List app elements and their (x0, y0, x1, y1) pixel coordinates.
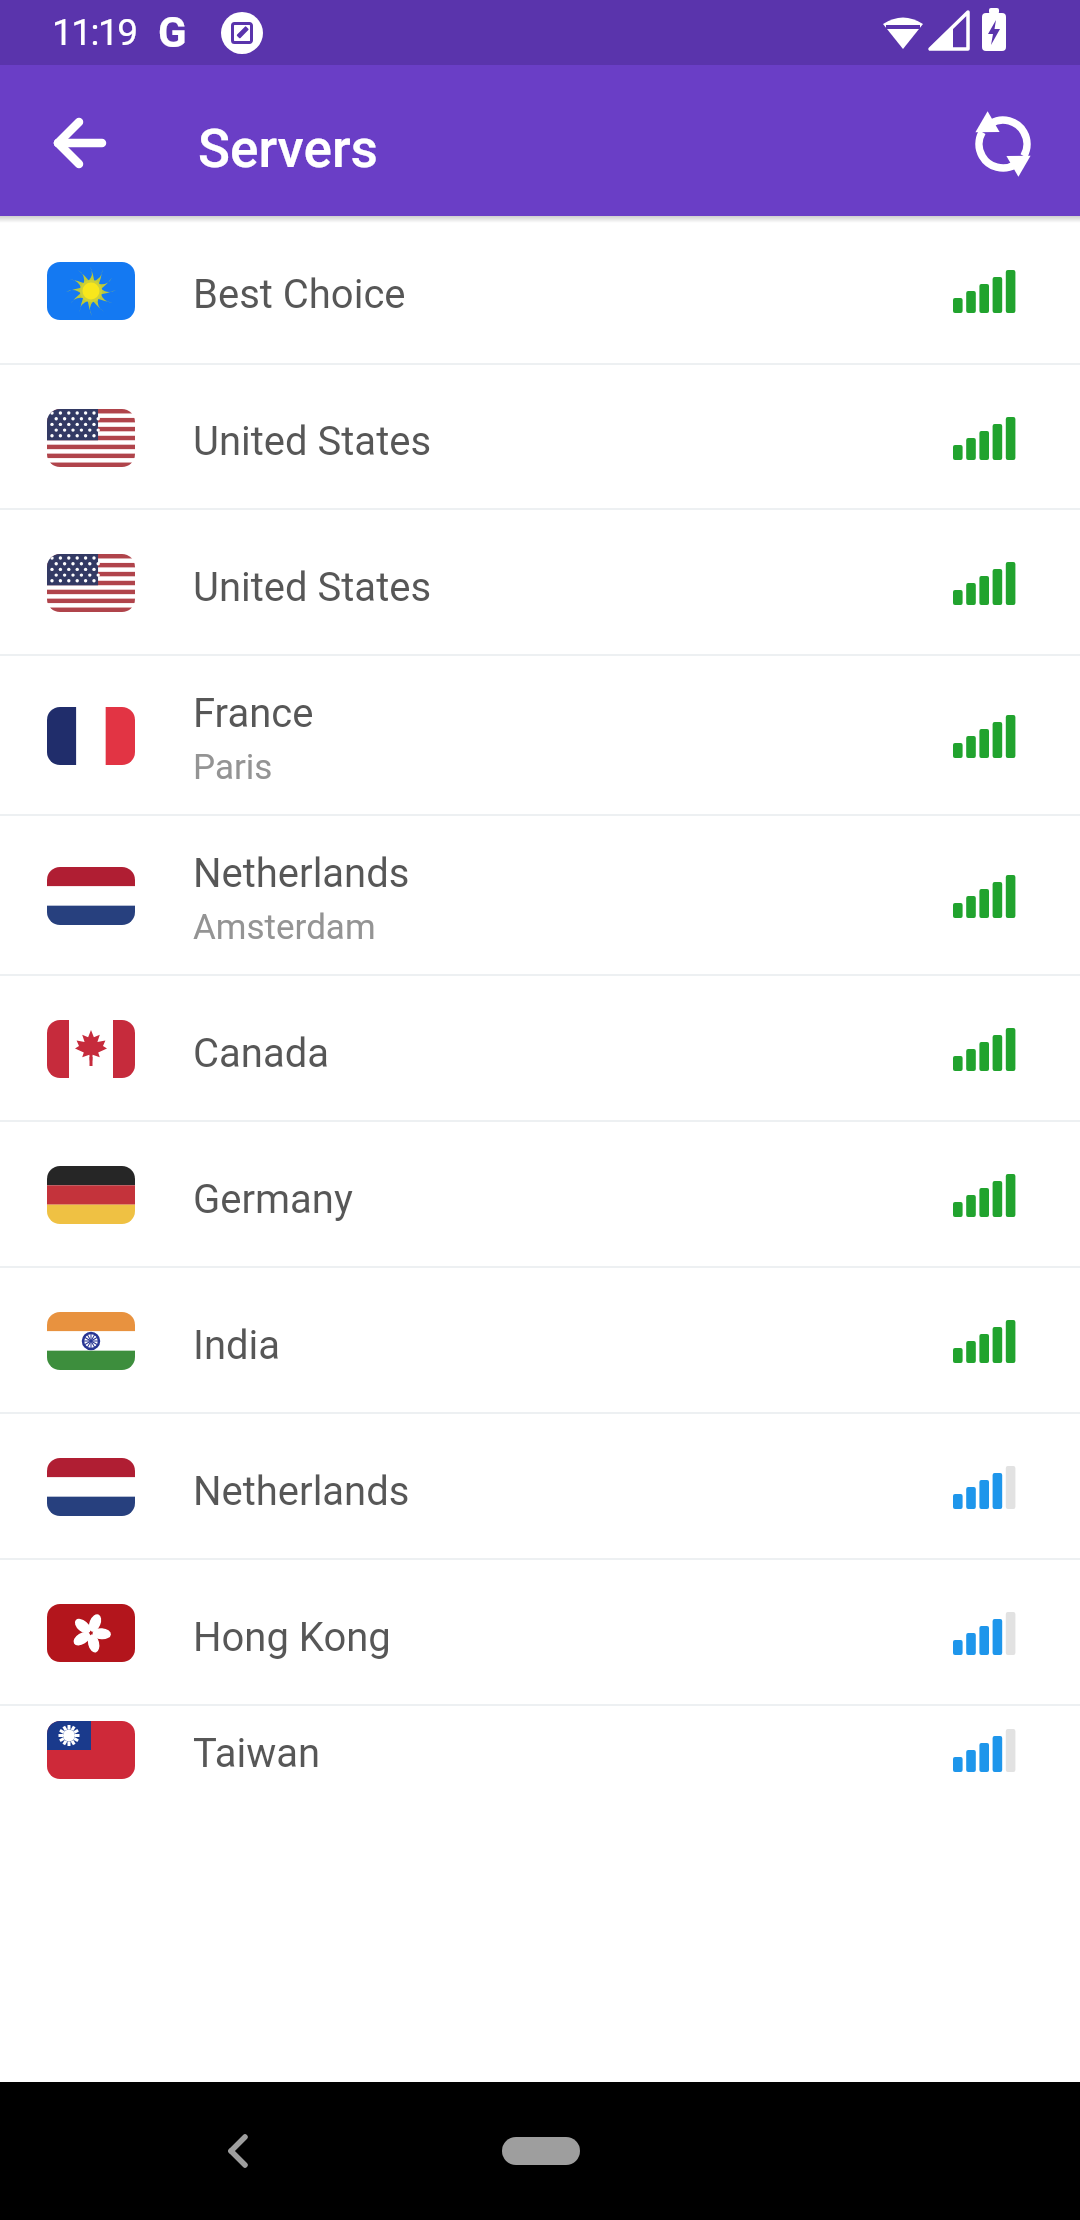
staticText: United States (193, 418, 432, 465)
button[interactable] (203, 2116, 273, 2186)
button[interactable]: Canada (0, 976, 1080, 1122)
button[interactable] (502, 2137, 580, 2165)
staticText: Taiwan (193, 1730, 321, 1777)
staticText: India (193, 1322, 281, 1369)
button[interactable]: United States (0, 510, 1080, 656)
staticText: Best Choice (193, 271, 406, 318)
button[interactable]: Netherlands (0, 816, 1080, 976)
staticText: G (158, 8, 187, 57)
button[interactable] (33, 96, 127, 190)
button[interactable] (956, 97, 1050, 191)
staticText: Paris (193, 747, 273, 788)
button[interactable]: Best Choice (0, 216, 1080, 365)
button[interactable]: India (0, 1268, 1080, 1414)
button[interactable]: Taiwan (0, 1706, 1080, 1793)
button[interactable]: Hong Kong (0, 1560, 1080, 1706)
button[interactable]: United States (0, 365, 1080, 510)
staticText: France (193, 690, 314, 737)
staticText: Netherlands (193, 850, 410, 897)
staticText: United States (193, 564, 432, 611)
staticText: Germany (193, 1176, 353, 1223)
staticText: Amsterdam (193, 907, 376, 948)
button[interactable]: France (0, 656, 1080, 816)
staticText: 11:19 (52, 11, 137, 54)
staticText: Netherlands (193, 1468, 410, 1515)
button[interactable]: Netherlands (0, 1414, 1080, 1560)
staticText: Hong Kong (193, 1614, 391, 1661)
staticText: Canada (193, 1030, 329, 1077)
button[interactable]: Germany (0, 1122, 1080, 1268)
staticText: Servers (198, 118, 378, 180)
